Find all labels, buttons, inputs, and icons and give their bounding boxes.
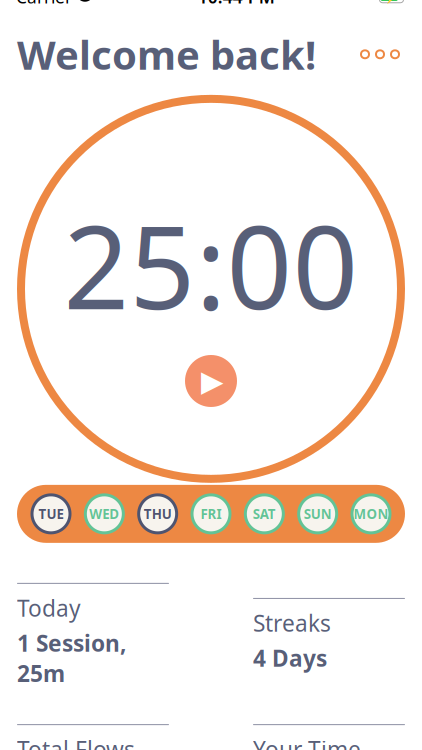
staticText: FRI <box>200 505 221 523</box>
button[interactable]: THU <box>137 493 179 535</box>
staticText: SAT <box>253 505 276 523</box>
staticText: 4 Days <box>253 643 327 673</box>
staticText: MON <box>353 505 388 523</box>
staticText: ⚡ <box>384 0 399 4</box>
staticText: THU <box>144 505 172 523</box>
staticText: Streaks <box>253 608 331 638</box>
staticText: ▶ <box>201 364 224 398</box>
button[interactable]: WED <box>83 493 125 535</box>
staticText: TUE <box>38 505 63 523</box>
staticText: 1 Session, 25m <box>17 628 126 688</box>
button[interactable]: SUN <box>297 493 339 535</box>
staticText: Your Time <box>253 734 361 750</box>
staticText: Today <box>17 593 81 623</box>
button[interactable]: MON <box>350 493 392 535</box>
button[interactable]: SAT <box>243 493 285 535</box>
staticText: 10:44 PM <box>198 0 275 8</box>
staticText: WED <box>89 505 119 523</box>
staticText: 25:00 <box>63 189 358 341</box>
staticText: Carrier <box>16 0 72 8</box>
staticText: Total Flows <box>17 734 135 750</box>
staticText: SUN <box>304 505 332 523</box>
button[interactable]: TUE <box>30 493 72 535</box>
staticText: Welcome back! <box>17 28 316 81</box>
button[interactable]: More options <box>355 38 405 70</box>
button[interactable]: Start timer <box>185 355 237 407</box>
button[interactable]: FRI <box>190 493 232 535</box>
